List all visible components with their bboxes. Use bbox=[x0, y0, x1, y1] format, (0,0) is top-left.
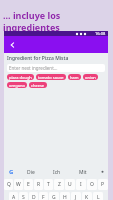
button[interactable]: L bbox=[93, 192, 103, 200]
button[interactable]: Enter next ingredient... bbox=[7, 64, 105, 72]
button[interactable]: H bbox=[60, 192, 70, 200]
button[interactable]: Back bbox=[7, 39, 18, 50]
staticText: pizza dough bbox=[9, 75, 32, 80]
staticText: S bbox=[22, 194, 25, 200]
button[interactable]: ham bbox=[68, 74, 81, 80]
staticText: Mit bbox=[79, 169, 87, 176]
button[interactable]: P bbox=[98, 179, 108, 190]
staticText: tomato sauce bbox=[38, 75, 64, 80]
staticText: Ingredient for Pizza Mista bbox=[7, 55, 69, 62]
staticText: cheese bbox=[31, 83, 45, 88]
staticText: Die bbox=[27, 169, 35, 176]
staticText: ham bbox=[70, 75, 79, 80]
button[interactable]: U bbox=[65, 179, 75, 190]
staticText: K bbox=[85, 194, 89, 200]
button[interactable]: G bbox=[49, 192, 59, 200]
button[interactable]: T bbox=[44, 179, 53, 190]
button[interactable]: D bbox=[29, 192, 38, 200]
staticText: ... incluye los ingredientes bbox=[3, 9, 113, 33]
staticText: Ich bbox=[53, 169, 61, 176]
button[interactable]: R bbox=[34, 179, 43, 190]
button[interactable]: Z bbox=[54, 179, 64, 190]
staticText: H bbox=[63, 194, 67, 200]
staticText: E bbox=[27, 181, 30, 188]
button[interactable]: onion bbox=[83, 74, 98, 80]
staticText: L bbox=[97, 194, 100, 200]
staticText: D bbox=[32, 194, 36, 200]
staticText: F bbox=[42, 194, 45, 200]
staticText: A bbox=[12, 194, 16, 200]
button[interactable]: O bbox=[87, 179, 97, 190]
button[interactable]: tomato sauce bbox=[36, 74, 66, 80]
staticText: Q bbox=[7, 181, 11, 188]
staticText: T bbox=[47, 181, 50, 188]
button[interactable]: K bbox=[82, 192, 92, 200]
button[interactable]: E bbox=[24, 179, 33, 190]
staticText: Z bbox=[58, 181, 61, 188]
button[interactable]: S bbox=[19, 192, 28, 200]
button[interactable]: J bbox=[71, 192, 81, 200]
button[interactable]: Q bbox=[4, 179, 13, 190]
staticText: R bbox=[37, 181, 41, 188]
staticText: P bbox=[101, 181, 105, 188]
button[interactable]: pizza dough bbox=[7, 74, 34, 80]
button[interactable]: cheese bbox=[29, 82, 47, 88]
button[interactable]: W bbox=[14, 179, 23, 190]
staticText: U bbox=[68, 181, 72, 188]
button[interactable]: A bbox=[9, 192, 18, 200]
staticText: G bbox=[52, 194, 56, 200]
staticText: G bbox=[9, 168, 14, 176]
button[interactable]: oregano bbox=[7, 82, 27, 88]
staticText: Enter next ingredient... bbox=[9, 65, 58, 71]
staticText: J bbox=[75, 194, 77, 200]
staticText: I bbox=[80, 181, 82, 188]
staticText: W bbox=[16, 181, 21, 188]
staticText: O bbox=[90, 181, 94, 188]
staticText: 16:08 bbox=[95, 31, 106, 36]
staticText: onion bbox=[85, 75, 96, 80]
staticText: oregano bbox=[9, 83, 25, 88]
button[interactable]: I bbox=[76, 179, 86, 190]
button[interactable]: F bbox=[39, 192, 48, 200]
